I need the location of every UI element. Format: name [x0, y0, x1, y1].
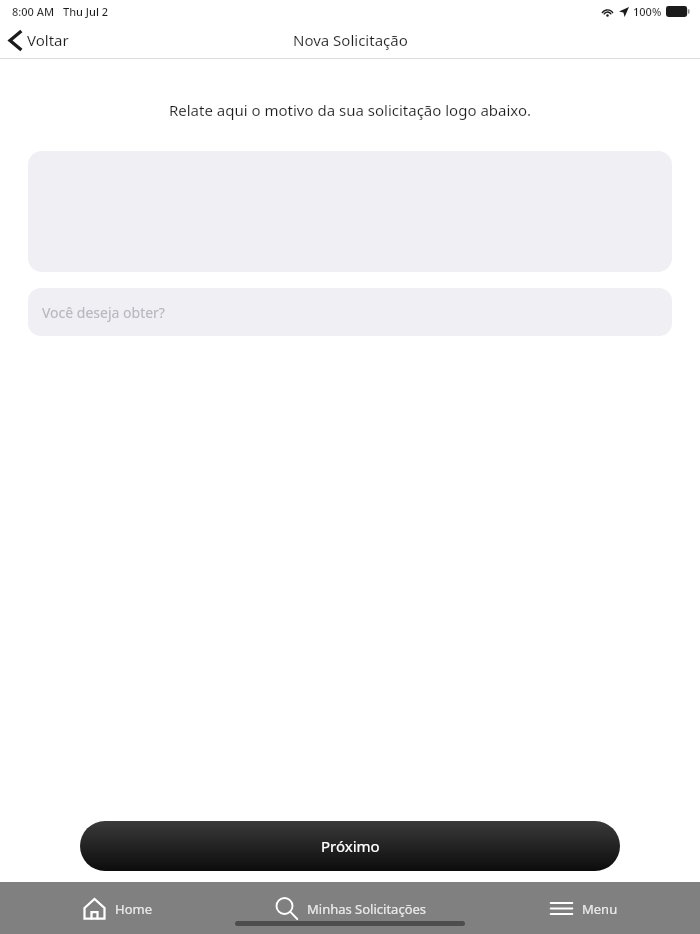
staticText: 8:00 AM	[12, 4, 55, 19]
button[interactable]: Minhas Solicitações	[234, 890, 467, 927]
staticText: Próximo	[321, 836, 380, 856]
button[interactable]: Menu	[467, 890, 700, 927]
button[interactable]: Home	[0, 890, 234, 927]
staticText: Home	[115, 900, 152, 918]
staticText: Thu Jul 2	[63, 4, 109, 19]
button[interactable]: Você deseja obter?	[28, 288, 672, 336]
button[interactable]: Próximo	[80, 821, 620, 871]
staticText: Voltar	[27, 30, 69, 50]
staticText: Você deseja obter?	[42, 303, 165, 322]
staticText: Menu	[582, 900, 618, 918]
staticText: Minhas Solicitações	[307, 900, 427, 918]
button[interactable]: Voltar	[0, 26, 83, 54]
staticText: Nova Solicitação	[293, 30, 408, 50]
staticText: 100%	[633, 4, 662, 19]
staticText: Relate aqui o motivo da sua solicitação …	[0, 100, 700, 120]
